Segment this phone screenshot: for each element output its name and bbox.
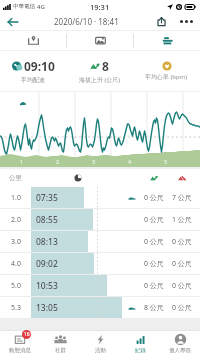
button[interactable]: Statistics [134, 31, 200, 50]
staticText: 平均心率 (bpm) [145, 73, 188, 81]
staticText: 平均配速 [21, 76, 45, 84]
staticText: 0 公尺 [172, 237, 192, 247]
button[interactable]: 活動 [80, 331, 120, 355]
staticText: 中華電信 [13, 3, 35, 10]
staticText: 2 [56, 158, 60, 165]
button[interactable]: More options [173, 13, 200, 30]
staticText: 7 公尺 [172, 193, 192, 203]
button[interactable]: 2.0 [0, 209, 200, 231]
staticText: 3 [92, 158, 96, 165]
staticText: 社群 [55, 347, 66, 354]
staticText: 19:31 [90, 2, 110, 12]
button[interactable]: Map [0, 31, 66, 50]
button[interactable]: 5.3 [0, 297, 200, 319]
staticText: 5 [164, 158, 168, 165]
staticText: 08:55 [36, 214, 58, 226]
staticText: 16 [24, 331, 30, 338]
staticText: 1 [20, 158, 24, 165]
staticText: 0 公尺 [144, 193, 164, 203]
staticText: 8 公尺 [144, 303, 164, 313]
staticText: 0 公尺 [144, 259, 164, 269]
staticText: 5.0 [11, 281, 21, 291]
staticText: 0 公尺 [172, 259, 192, 269]
button[interactable]: 5.0 [0, 275, 200, 297]
staticText: 4G [37, 3, 45, 11]
staticText: 1.0 [11, 193, 21, 203]
staticText: 0 公尺 [144, 237, 164, 247]
button[interactable]: Share [149, 13, 173, 30]
staticText: 活動 [95, 347, 106, 354]
button[interactable]: Back [0, 13, 25, 30]
button[interactable]: 1.0 [0, 187, 200, 209]
staticText: 3.0 [11, 237, 21, 247]
staticText: 2.0 [11, 215, 21, 225]
staticText: 公里 [9, 174, 22, 182]
staticText: 2020/6/10 · 18:41 [54, 16, 119, 27]
staticText: 1 公尺 [172, 215, 192, 225]
button[interactable]: Photos [67, 31, 133, 50]
button[interactable]: 紀錄 [120, 331, 160, 355]
staticText: 4.0 [11, 259, 21, 269]
button[interactable]: 個人專區 [160, 331, 200, 355]
staticText: 07:35 [36, 192, 58, 204]
button[interactable]: 4.0 [0, 253, 200, 275]
button[interactable]: 社群 [40, 331, 80, 355]
staticText: 09:10 [24, 58, 55, 74]
staticText: 0 公尺 [144, 215, 164, 225]
staticText: 10:53 [36, 280, 58, 292]
staticText: 0 公尺 [172, 303, 192, 313]
staticText: 13:05 [36, 302, 58, 314]
button[interactable]: 3.0 [0, 231, 200, 253]
staticText: 動態消息 [9, 347, 31, 354]
staticText: 4 [128, 158, 132, 165]
staticText: 紀錄 [135, 347, 146, 354]
button[interactable]: 16 [0, 331, 40, 355]
staticText: 0 公尺 [172, 281, 192, 291]
staticText: 個人專區 [169, 347, 191, 354]
staticText: 5.3 [11, 303, 21, 313]
staticText: 09:02 [36, 258, 58, 270]
staticText: 08:13 [36, 236, 58, 248]
staticText: 海拔上升 (公尺) [79, 76, 121, 84]
staticText: 0 公尺 [144, 281, 164, 291]
staticText: 8 [102, 58, 109, 74]
